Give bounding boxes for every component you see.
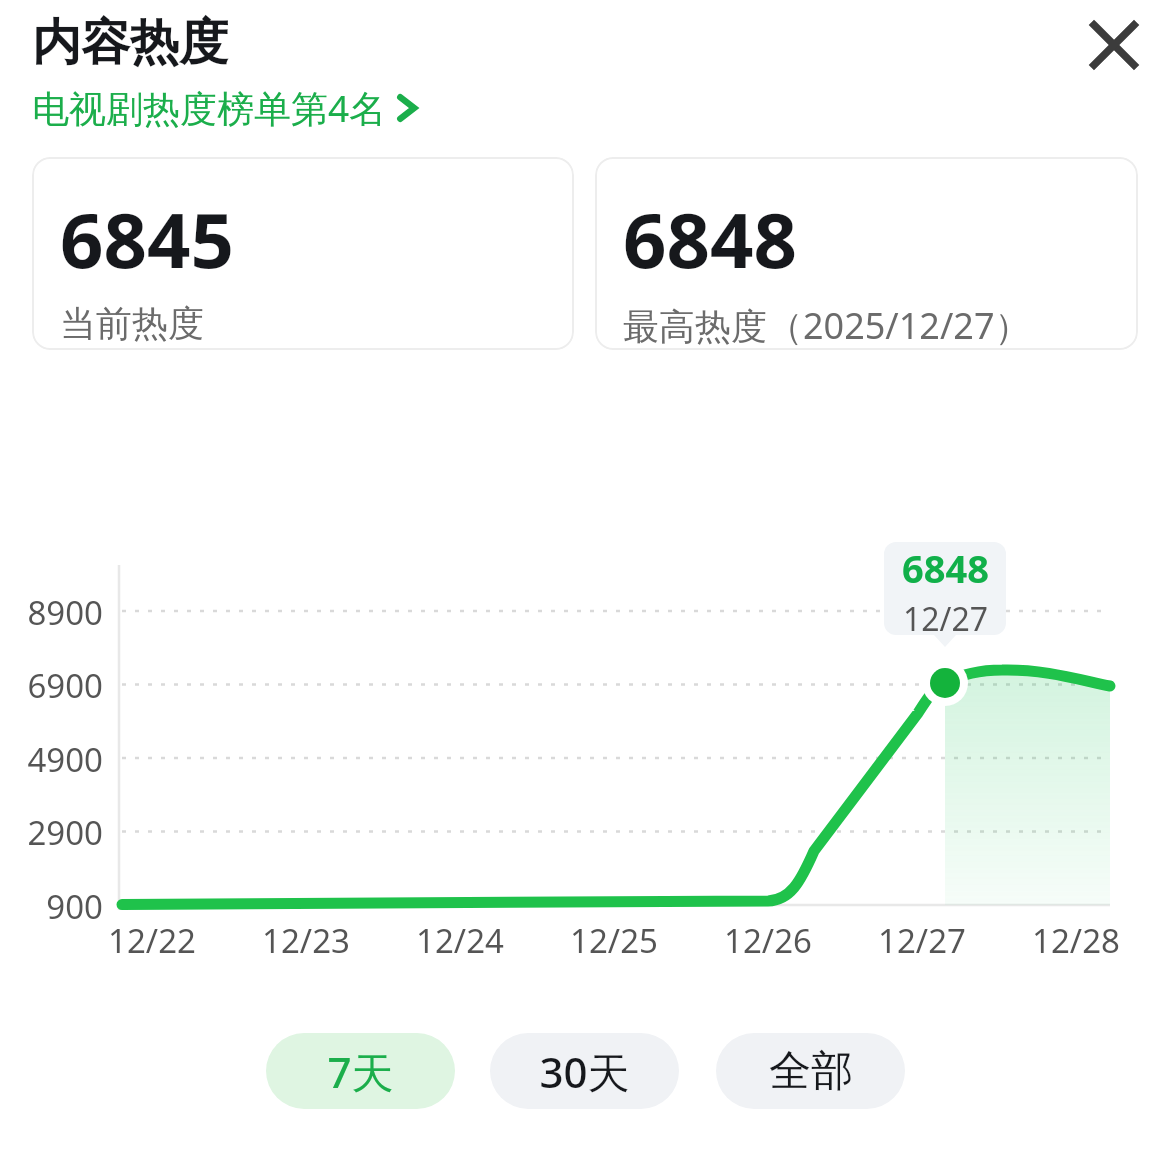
staticText: 6848 bbox=[623, 187, 797, 291]
button[interactable]: Close bbox=[1076, 7, 1152, 83]
staticText: 当前热度 bbox=[60, 301, 204, 346]
staticText: 12/22 bbox=[72, 918, 232, 963]
button[interactable]: 7天 bbox=[266, 1033, 455, 1109]
staticText: 全部 bbox=[769, 1045, 853, 1098]
staticText: 12/24 bbox=[380, 918, 540, 963]
staticText: 12/23 bbox=[226, 918, 386, 963]
staticText: 6845 bbox=[60, 187, 234, 291]
staticText: 4900 bbox=[0, 737, 103, 782]
staticText: 8900 bbox=[0, 590, 103, 635]
button[interactable]: 电视剧热度榜单第4名 bbox=[32, 82, 419, 133]
staticText: 6900 bbox=[0, 663, 103, 708]
staticText: 6848 bbox=[902, 542, 989, 594]
staticText: 最高热度（2025/12/27） bbox=[623, 301, 1031, 350]
button[interactable]: 全部 bbox=[716, 1033, 905, 1109]
staticText: 电视剧热度榜单第4名 bbox=[32, 82, 387, 133]
button[interactable]: 6845 bbox=[32, 157, 574, 350]
staticText: 12/27 bbox=[842, 918, 1002, 963]
button[interactable]: 6848 bbox=[595, 157, 1138, 350]
staticText: 2900 bbox=[0, 810, 103, 855]
staticText: 12/28 bbox=[996, 918, 1156, 963]
staticText: 7天 bbox=[327, 1043, 394, 1100]
staticText: 12/26 bbox=[688, 918, 848, 963]
staticText: 900 bbox=[0, 884, 103, 929]
button[interactable]: 30天 bbox=[490, 1033, 679, 1109]
staticText: 内容热度 bbox=[32, 12, 228, 74]
staticText: 30天 bbox=[539, 1043, 630, 1100]
staticText: 12/27 bbox=[903, 597, 989, 635]
staticText: 12/25 bbox=[534, 918, 694, 963]
